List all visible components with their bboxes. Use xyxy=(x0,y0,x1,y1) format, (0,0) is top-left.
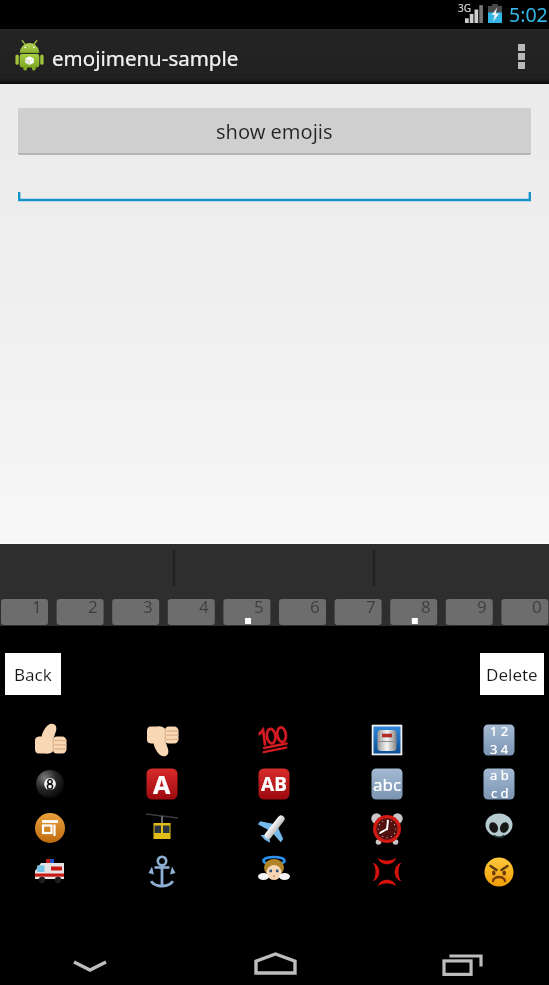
staticText: 3G xyxy=(458,1,471,15)
staticText: 5 xyxy=(254,595,264,618)
button[interactable]: 3 xyxy=(112,599,159,625)
button[interactable]: 0 xyxy=(501,599,548,625)
staticText: 3 4 xyxy=(490,740,509,758)
staticText: show emojis xyxy=(216,118,333,145)
button[interactable]: Home xyxy=(245,943,305,983)
staticText: 9 xyxy=(477,595,487,618)
button[interactable]: More options xyxy=(493,29,549,84)
staticText: 5:02 xyxy=(509,1,548,28)
staticText: AB xyxy=(261,771,287,797)
button[interactable]: 4 xyxy=(168,599,215,625)
button[interactable]: anger symbol xyxy=(359,850,415,894)
staticText: 6 xyxy=(310,595,320,618)
button[interactable]: Delete xyxy=(480,653,544,695)
staticText: 7 xyxy=(366,595,376,618)
staticText: A xyxy=(153,767,171,801)
button[interactable] xyxy=(18,166,531,202)
staticText: 3 xyxy=(143,595,153,618)
staticText: a b xyxy=(490,766,509,784)
button[interactable]: 9 xyxy=(446,599,493,625)
staticText: 4 xyxy=(199,595,209,618)
button[interactable]: thumbs down xyxy=(134,718,190,762)
staticText: 1 2 xyxy=(490,722,509,740)
button[interactable]: anchor xyxy=(134,850,190,894)
button[interactable]: 6 xyxy=(279,599,326,625)
staticText: Back xyxy=(14,663,52,686)
button[interactable]: AB button xyxy=(246,762,302,806)
button[interactable]: thumbs up xyxy=(22,718,78,762)
button[interactable]: 1 xyxy=(1,599,48,625)
staticText: abc xyxy=(373,773,402,796)
staticText: emojimenu-sample xyxy=(52,44,239,72)
button[interactable]: baby angel xyxy=(246,850,302,894)
button[interactable]: Japanese reserved button xyxy=(359,718,415,762)
button[interactable]: abcd input xyxy=(471,762,527,806)
button[interactable]: hundred points xyxy=(246,718,302,762)
button[interactable]: A button xyxy=(134,762,190,806)
button[interactable]: angry face xyxy=(471,850,527,894)
staticText: 8 xyxy=(421,595,431,618)
button[interactable]: Japanese acceptable button xyxy=(22,806,78,850)
staticText: 1 xyxy=(32,595,42,618)
button[interactable]: input numbers xyxy=(471,718,527,762)
staticText: 0 xyxy=(532,595,542,618)
button[interactable]: show emojis xyxy=(18,108,531,155)
button[interactable]: 7 xyxy=(335,599,382,625)
button[interactable]: Recent apps xyxy=(432,944,492,984)
button[interactable]: 2 xyxy=(57,599,104,625)
button[interactable]: abc input xyxy=(359,762,415,806)
button[interactable]: 5 xyxy=(223,599,270,625)
button[interactable]: Back xyxy=(5,653,61,695)
button[interactable]: aerial tramway xyxy=(134,806,190,850)
staticText: c d xyxy=(491,784,509,802)
staticText: Delete xyxy=(486,663,538,686)
button[interactable]: airplane xyxy=(246,806,302,850)
button[interactable]: Hide keyboard xyxy=(60,946,120,985)
button[interactable]: alarm clock xyxy=(359,806,415,850)
staticText: 2 xyxy=(88,595,98,618)
button[interactable]: 8 xyxy=(390,599,437,625)
button[interactable]: alien xyxy=(471,806,527,850)
button[interactable]: ambulance xyxy=(22,850,78,894)
button[interactable]: pool 8 ball xyxy=(22,762,78,806)
